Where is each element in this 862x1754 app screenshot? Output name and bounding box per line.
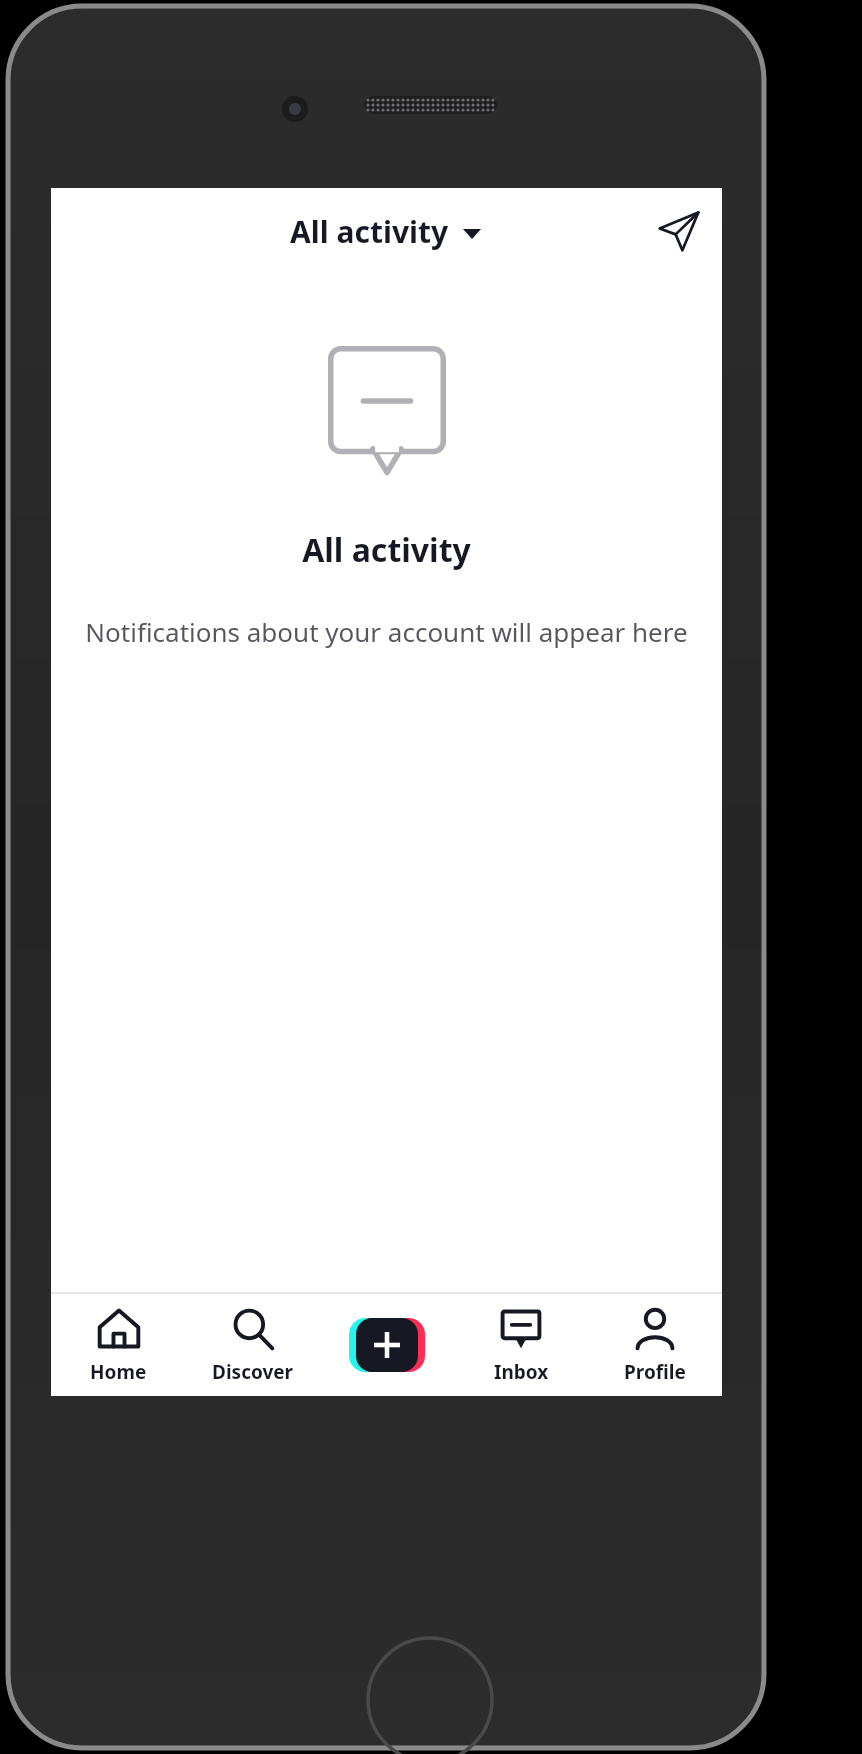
button[interactable]: Share: [650, 202, 708, 260]
button[interactable]: All activity: [282, 205, 491, 258]
button[interactable]: Inbox: [454, 1294, 588, 1396]
button[interactable]: Discover: [186, 1294, 320, 1396]
staticText: All activity: [302, 528, 471, 572]
button[interactable]: Profile: [588, 1294, 722, 1396]
staticText: Inbox: [494, 1359, 549, 1385]
staticText: Discover: [212, 1359, 294, 1385]
button[interactable]: Home: [51, 1294, 186, 1396]
button[interactable]: Create: [320, 1294, 454, 1396]
staticText: Notifications about your account will ap…: [85, 614, 688, 649]
staticText: Profile: [624, 1359, 686, 1385]
staticText: All activity: [290, 211, 449, 252]
staticText: Home: [90, 1359, 147, 1385]
